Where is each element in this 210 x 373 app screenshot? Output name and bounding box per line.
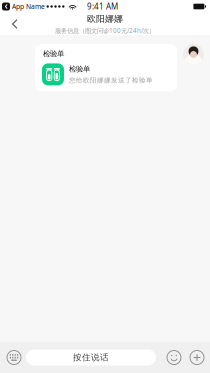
staticText: App Name: [12, 2, 45, 11]
staticText: 服务信息（图文问诊100元/24h/次）: [55, 26, 155, 35]
button[interactable]: 检验单: [35, 44, 177, 91]
staticText: 检验单: [69, 64, 90, 74]
button[interactable]: Keyboard: [5, 348, 23, 366]
staticText: 检验单: [43, 49, 64, 58]
button[interactable]: 按住说话: [26, 349, 156, 365]
button[interactable]: Emoji: [165, 348, 183, 366]
staticText: 9:41 AM: [87, 1, 118, 12]
staticText: 按住说话: [73, 352, 109, 363]
staticText: 您给欧阳娜娜发送了检验单: [69, 76, 153, 84]
button[interactable]: Back: [0, 14, 25, 34]
button[interactable]: More: [188, 348, 206, 366]
staticText: 欧阳娜娜: [87, 13, 123, 24]
